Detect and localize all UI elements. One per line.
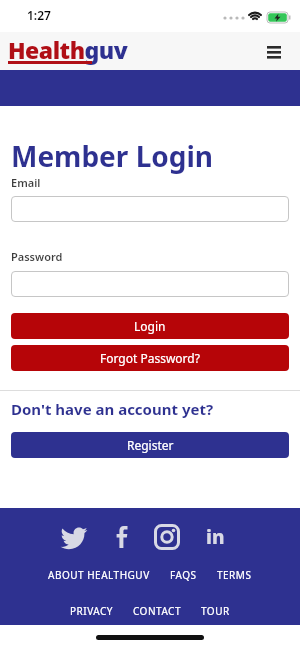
staticText: 1:27 <box>27 7 51 23</box>
staticText: ABOUT HEALTHGUV <box>48 568 150 582</box>
staticText: TERMS <box>217 568 252 582</box>
staticText: Member Login <box>11 137 214 175</box>
button[interactable]: Healthguv <box>8 34 128 68</box>
staticText: Login <box>134 318 166 334</box>
staticText: PRIVACY <box>70 604 113 618</box>
staticText: TOUR <box>201 604 230 618</box>
button[interactable]: TOUR <box>201 604 230 618</box>
button[interactable]: FAQS <box>170 568 197 582</box>
button[interactable]: CONTACT <box>133 604 181 618</box>
button[interactable]: Register <box>11 432 289 458</box>
button[interactable] <box>113 526 135 548</box>
button[interactable] <box>264 41 284 61</box>
button[interactable] <box>11 196 289 222</box>
button[interactable] <box>154 524 180 550</box>
staticText: CONTACT <box>133 604 181 618</box>
staticText: Email <box>11 175 41 190</box>
button[interactable] <box>11 271 289 297</box>
staticText: Register <box>127 437 174 453</box>
button[interactable]: in <box>202 524 228 550</box>
button[interactable]: TERMS <box>217 568 252 582</box>
staticText: Don't have an account yet? <box>11 399 214 419</box>
staticText: Healthguv <box>8 34 128 65</box>
button[interactable]: PRIVACY <box>70 604 113 618</box>
staticText: in <box>206 524 225 550</box>
staticText: Password <box>11 249 63 264</box>
button[interactable]: Login <box>11 313 289 339</box>
staticText: Forgot Password? <box>100 350 200 366</box>
button[interactable] <box>59 524 89 550</box>
button[interactable]: ABOUT HEALTHGUV <box>48 568 150 582</box>
button[interactable]: Forgot Password? <box>11 345 289 371</box>
staticText: FAQS <box>170 568 197 582</box>
